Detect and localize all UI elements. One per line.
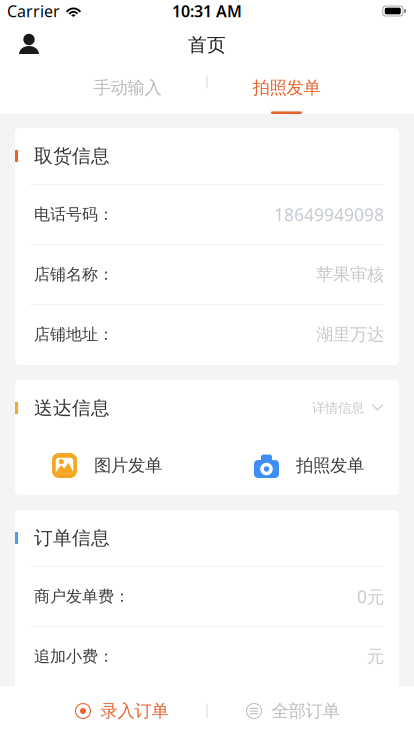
staticText: 元 xyxy=(367,646,384,667)
staticText: 全部订单 xyxy=(271,700,339,722)
staticText: 店铺名称： xyxy=(34,265,114,284)
staticText: 录入订单 xyxy=(100,700,168,722)
staticText: 10:31 AM xyxy=(172,0,242,22)
staticText: 追加小费： xyxy=(34,647,114,666)
staticText: 店铺地址： xyxy=(34,325,114,344)
button[interactable]: 详情信息 xyxy=(312,400,399,416)
staticText: 详情信息 xyxy=(312,400,364,416)
staticText: 18649949098 xyxy=(274,203,384,226)
staticText: 湖里万达 xyxy=(316,324,384,345)
staticText: 电话号码： xyxy=(34,205,114,224)
staticText: 图片发单 xyxy=(94,455,162,476)
button[interactable]: 全部订单 xyxy=(207,686,377,736)
staticText: 送达信息 xyxy=(34,396,110,419)
button[interactable]: 录入订单 xyxy=(36,686,206,736)
button[interactable]: 图片发单 xyxy=(15,436,213,495)
button[interactable]: 拍照发单 xyxy=(207,66,365,114)
button[interactable]: 拍照发单 xyxy=(213,436,399,495)
button[interactable]: Profile xyxy=(10,26,48,64)
staticText: 手动输入 xyxy=(93,77,161,98)
staticText: 取货信息 xyxy=(34,144,110,167)
staticText: 拍照发单 xyxy=(296,455,364,476)
staticText: 0元 xyxy=(357,585,384,608)
staticText: 首页 xyxy=(188,33,226,56)
button[interactable]: 手动输入 xyxy=(48,66,206,114)
staticText: 苹果审核 xyxy=(316,264,384,285)
staticText: 商户发单费： xyxy=(34,587,130,606)
staticText: 拍照发单 xyxy=(252,77,320,98)
staticText: Carrier xyxy=(7,0,60,22)
staticText: 订单信息 xyxy=(34,526,110,549)
